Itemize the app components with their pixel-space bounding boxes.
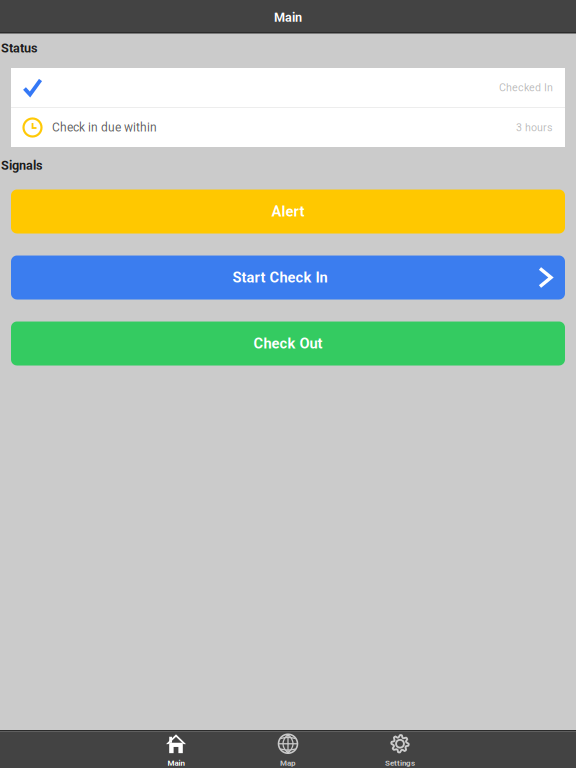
staticText: Start Check In xyxy=(232,269,327,286)
staticText: Alert xyxy=(271,203,304,220)
staticText: Main xyxy=(167,758,184,768)
staticText: Map xyxy=(280,758,296,768)
staticText: 3 hours xyxy=(516,121,553,134)
button[interactable]: Check Out xyxy=(11,321,565,365)
staticText: Check in due within xyxy=(52,120,157,135)
staticText: Signals xyxy=(1,158,43,173)
button[interactable]: Alert xyxy=(11,189,565,233)
button[interactable]: Main xyxy=(120,731,232,768)
staticText: Check Out xyxy=(253,335,322,352)
staticText: Settings xyxy=(385,758,415,768)
button[interactable]: Settings xyxy=(344,731,456,768)
staticText: Main xyxy=(274,10,302,25)
button[interactable]: Map xyxy=(232,731,344,768)
staticText: Checked In xyxy=(499,81,553,94)
staticText: Status xyxy=(1,41,38,56)
button[interactable]: Start Check In xyxy=(11,255,565,299)
